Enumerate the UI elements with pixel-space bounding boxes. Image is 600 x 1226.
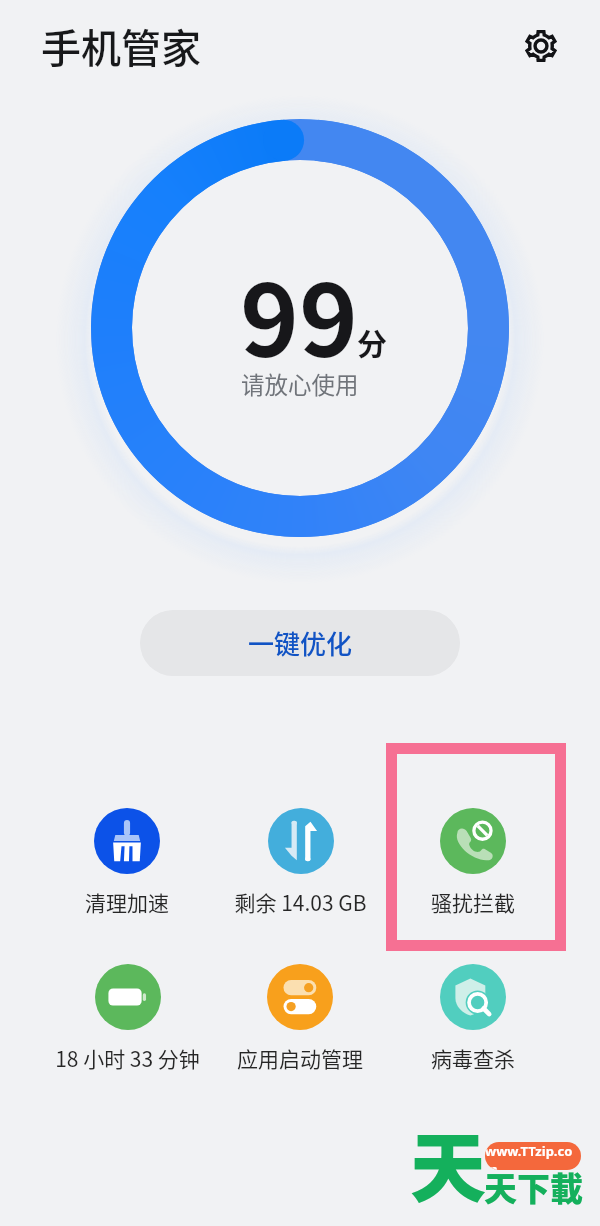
staticText: 99 — [240, 241, 358, 386]
button[interactable]: 病毒查杀 — [388, 964, 558, 1074]
button[interactable]: 18 小时 33 分钟 — [42, 964, 212, 1074]
staticText: 天下載 — [484, 1163, 583, 1211]
staticText: 应用启动管理 — [237, 1043, 363, 1073]
staticText: 骚扰拦截 — [431, 887, 515, 917]
staticText: 18 小时 33 分钟 — [55, 1043, 200, 1073]
staticText: www.TTzip.com — [485, 1142, 581, 1170]
button[interactable]: 一键优化 — [140, 610, 460, 676]
button[interactable]: 应用启动管理 — [215, 964, 385, 1074]
staticText: 剩余 14.03 GB — [234, 887, 367, 917]
button[interactable]: 清理加速 — [42, 808, 212, 918]
staticText: 分 — [357, 320, 387, 363]
button[interactable]: 剩余 14.03 GB — [215, 808, 385, 918]
staticText: 一键优化 — [248, 624, 353, 662]
button[interactable]: 骚扰拦截 — [388, 808, 558, 918]
staticText: 病毒查杀 — [431, 1043, 515, 1073]
staticText: 手机管家 — [41, 17, 201, 75]
staticText: 天 — [410, 1108, 486, 1218]
staticText: 清理加速 — [85, 887, 169, 917]
button[interactable]: Settings — [517, 22, 565, 70]
staticText: 请放心使用 — [241, 367, 359, 401]
